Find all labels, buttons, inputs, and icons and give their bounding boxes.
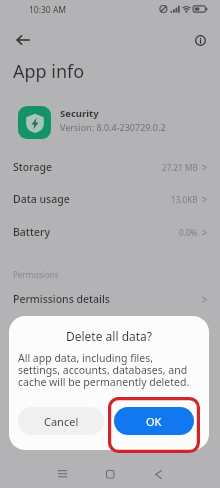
staticText: 0.0%: [179, 227, 198, 238]
button[interactable]: App details: [188, 28, 212, 52]
button[interactable]: Data usage: [0, 184, 220, 214]
staticText: 13.0KB: [171, 194, 198, 205]
staticText: Security: [60, 107, 99, 120]
button[interactable]: Permissions details: [0, 284, 220, 314]
button[interactable]: Back: [11, 28, 35, 52]
staticText: Version: 8.0.4-230729.0.2: [60, 121, 166, 133]
staticText: 27.21 MB: [162, 162, 198, 173]
button[interactable]: Cancel: [18, 407, 104, 435]
staticText: 10:30 AM: [29, 4, 67, 16]
button[interactable]: Battery: [0, 217, 220, 247]
button[interactable]: OK: [114, 407, 194, 435]
button[interactable]: Storage: [0, 152, 220, 182]
staticText: Storage: [13, 160, 52, 174]
staticText: Data usage: [13, 192, 70, 206]
staticText: Permissions details: [13, 292, 110, 306]
button[interactable]: Back: [146, 462, 170, 486]
staticText: Cancel: [44, 414, 79, 429]
staticText: OK: [146, 414, 162, 429]
staticText: App info: [13, 59, 85, 84]
staticText: Permissions: [13, 269, 59, 280]
button[interactable]: Recents: [50, 462, 74, 486]
staticText: All app data, including files, settings,…: [18, 351, 202, 389]
staticText: Battery: [13, 225, 50, 239]
staticText: Delete all data?: [9, 328, 209, 344]
button[interactable]: Home: [98, 462, 122, 486]
